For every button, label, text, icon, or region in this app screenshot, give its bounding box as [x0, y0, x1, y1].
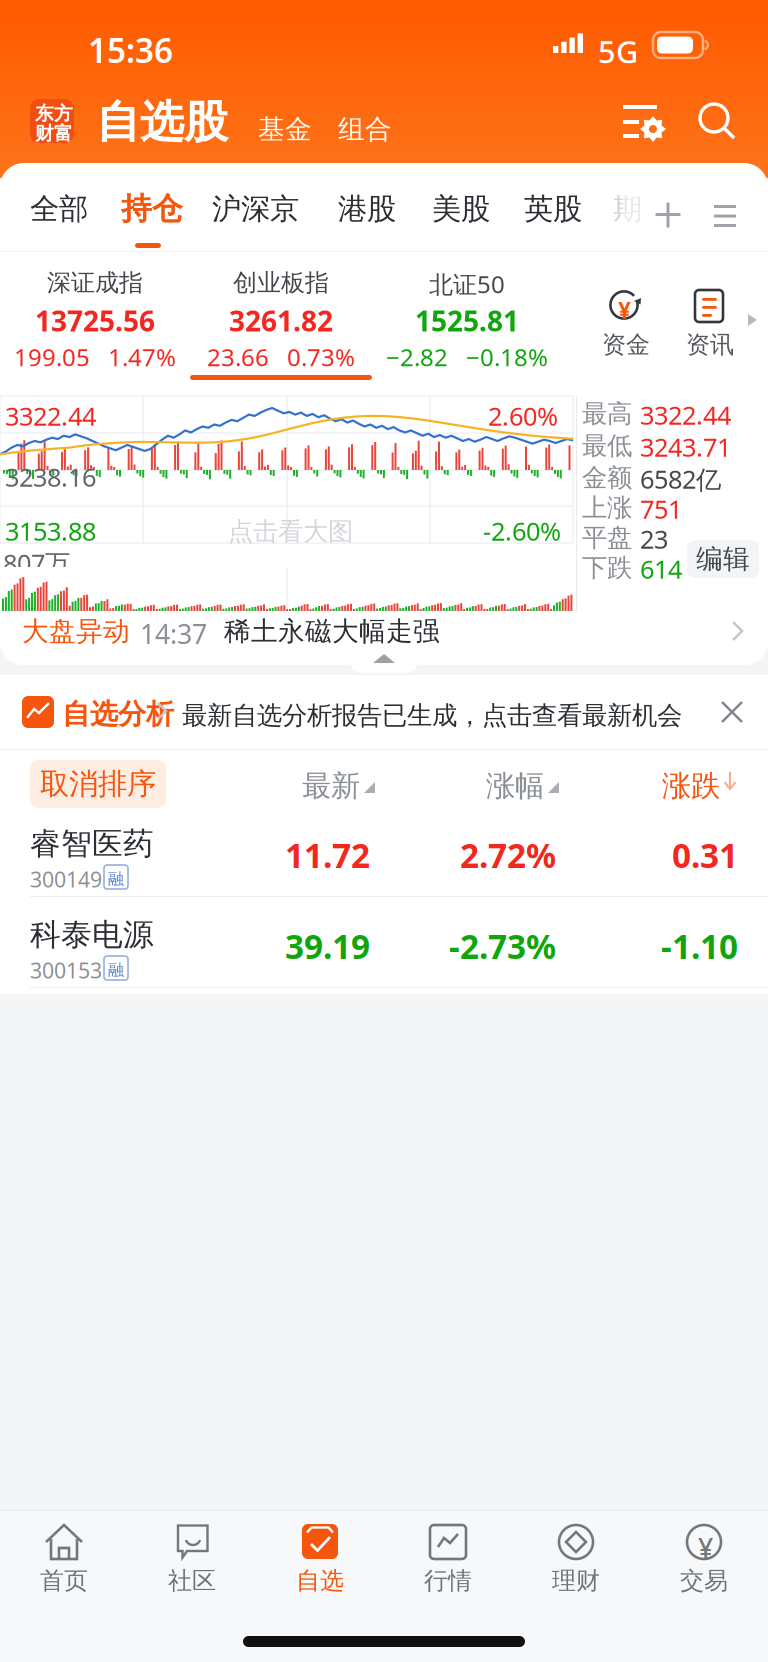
staticText: 交易 — [680, 1566, 728, 1595]
staticText: 自选股 — [96, 95, 228, 149]
button[interactable]: 持仓 — [122, 163, 182, 251]
staticText: 北证50 — [429, 268, 505, 300]
staticText: 2.72% — [460, 833, 556, 877]
button[interactable]: 科泰电源 — [0, 897, 768, 988]
button[interactable]: 美股 — [432, 163, 490, 251]
staticText: 300153 — [30, 956, 102, 984]
staticText: 东方 — [35, 102, 73, 125]
staticText: 取消排序 — [40, 766, 156, 802]
button[interactable]: 睿智医药 — [0, 806, 768, 897]
staticText: 涨幅 — [486, 768, 544, 804]
button[interactable]: Collapse — [350, 645, 418, 673]
staticText: -2.60% — [483, 514, 561, 548]
button[interactable]: 英股 — [524, 163, 582, 251]
staticText: ¥ — [618, 295, 631, 325]
staticText: 财富 — [35, 122, 73, 145]
staticText: 资讯 — [686, 330, 734, 359]
staticText: 睿智医药 — [30, 825, 154, 863]
button[interactable]: 创业板指 — [186, 252, 376, 380]
staticText: 39.19 — [285, 924, 370, 968]
button[interactable]: Dismiss — [706, 686, 758, 738]
staticText: 稀土永磁大幅走强 — [224, 615, 440, 648]
button[interactable]: 3322.44 — [0, 396, 573, 612]
staticText: 自选分析 — [62, 697, 174, 731]
staticText: 涨跌 — [662, 768, 720, 804]
staticText: 3243.71 — [640, 430, 731, 464]
button[interactable]: ¥ — [594, 252, 656, 362]
staticText: 3322.44 — [640, 398, 731, 432]
staticText: 2.60% — [488, 399, 558, 433]
staticText: 最新自选分析报告已生成，点击查看最新机会 — [182, 700, 682, 731]
button[interactable]: 最新 — [302, 760, 384, 806]
staticText: 6582亿 — [640, 462, 721, 496]
staticText: 0.31 — [672, 833, 738, 877]
button[interactable]: 大盘异动 — [0, 605, 768, 665]
staticText: 最低 — [582, 430, 632, 461]
staticText: 3261.82 — [229, 302, 333, 339]
staticText: −2.82 −0.18% — [386, 341, 548, 373]
staticText: 点击看大图 — [228, 516, 353, 547]
staticText: 组合 — [338, 113, 392, 146]
button[interactable]: 取消排序 — [30, 760, 166, 808]
staticText: 沪深京 — [212, 191, 299, 227]
staticText: 自选 — [296, 1566, 344, 1595]
button[interactable]: All lists — [700, 188, 750, 244]
button[interactable]: Add — [643, 187, 693, 243]
staticText: 3153.88 — [5, 514, 96, 548]
staticText: -1.10 — [661, 924, 738, 968]
staticText: 下跌 — [582, 552, 632, 583]
staticText: 持仓 — [121, 190, 183, 228]
button[interactable]: Manage — [620, 100, 668, 144]
button[interactable]: 北证50 — [372, 252, 562, 380]
staticText: 614 — [640, 552, 682, 586]
staticText: 行情 — [424, 1566, 472, 1595]
staticText: 平盘 — [582, 522, 632, 553]
staticText: 深证成指 — [47, 268, 143, 297]
button[interactable]: 涨跌 — [662, 760, 744, 806]
staticText: 首页 — [40, 1566, 88, 1595]
button[interactable]: 资讯 — [678, 252, 740, 362]
staticText: ¥ — [698, 1530, 713, 1565]
button[interactable]: 沪深京 — [212, 163, 300, 251]
staticText: 全部 — [30, 191, 88, 227]
button[interactable]: 社区 — [128, 1510, 256, 1606]
staticText: 807万 — [3, 546, 70, 580]
staticText: 港股 — [338, 191, 396, 227]
staticText: 融 — [108, 869, 124, 889]
button[interactable]: 全部 — [30, 163, 88, 251]
staticText: -2.73% — [449, 924, 556, 968]
staticText: 融 — [108, 960, 124, 980]
button[interactable]: 编辑 — [687, 540, 759, 578]
button[interactable]: 港股 — [338, 163, 396, 251]
staticText: 15:36 — [88, 28, 173, 72]
button[interactable]: 理财 — [512, 1510, 640, 1606]
staticText: 11.72 — [285, 833, 370, 877]
staticText: 创业板指 — [233, 268, 329, 297]
staticText: 社区 — [168, 1566, 216, 1595]
button[interactable]: 深证成指 — [0, 252, 190, 380]
staticText: 上涨 — [582, 492, 632, 523]
button[interactable]: 涨幅 — [486, 760, 568, 806]
staticText: 资金 — [602, 330, 650, 359]
button[interactable]: 自选分析 — [0, 675, 700, 749]
button[interactable]: 首页 — [0, 1510, 128, 1606]
button[interactable]: 行情 — [384, 1510, 512, 1606]
staticText: 基金 — [258, 113, 312, 146]
staticText: 5G — [598, 31, 638, 72]
staticText: 23.66 0.73% — [207, 341, 355, 373]
staticText: 最新 — [302, 768, 360, 804]
staticText: 3322.44 — [5, 399, 96, 433]
staticText: 最高 — [582, 398, 632, 429]
staticText: 美股 — [432, 191, 490, 227]
staticText: 金额 — [582, 462, 632, 493]
staticText: 1525.81 — [415, 302, 519, 339]
button[interactable]: 自选 — [256, 1510, 384, 1606]
staticText: 科泰电源 — [30, 916, 154, 954]
button[interactable]: ¥ — [640, 1510, 768, 1606]
staticText: 3238.16 — [5, 460, 96, 494]
staticText: 理财 — [552, 1566, 600, 1595]
button[interactable]: Search — [696, 100, 740, 144]
staticText: 大盘异动 — [22, 615, 130, 648]
staticText: 14:37 — [140, 616, 207, 651]
staticText: 期 — [613, 191, 642, 227]
